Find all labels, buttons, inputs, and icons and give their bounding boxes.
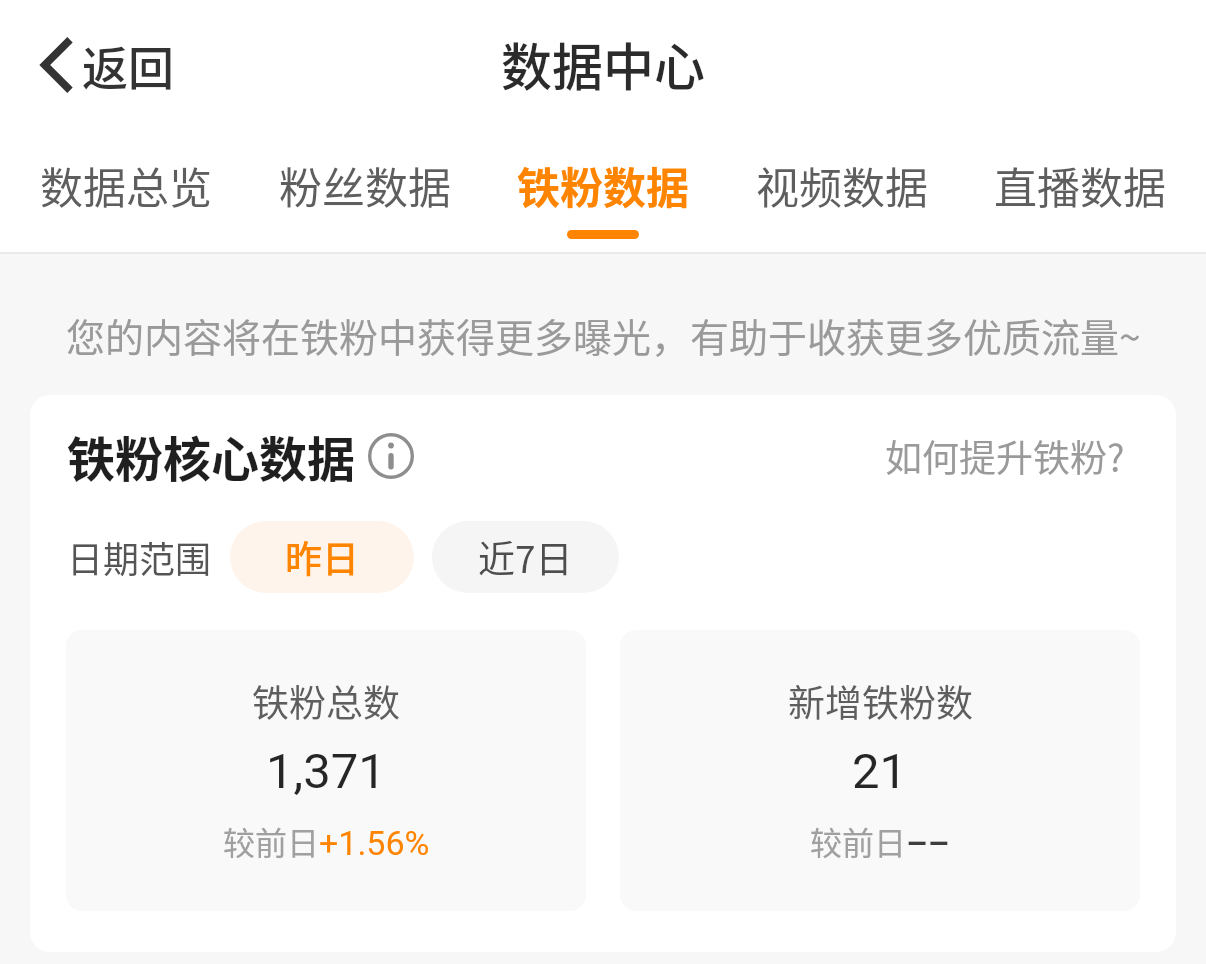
staticText: 返回 bbox=[82, 32, 174, 99]
staticText: 数据中心 bbox=[501, 27, 706, 101]
button[interactable]: 直播数据 bbox=[994, 128, 1166, 252]
staticText: 铁粉数据 bbox=[517, 154, 689, 216]
staticText: 粉丝数据 bbox=[279, 154, 451, 216]
button[interactable]: 铁粉总数 bbox=[66, 630, 586, 911]
button[interactable]: 如何提升铁粉? bbox=[885, 429, 1125, 483]
button[interactable]: 昨日 bbox=[230, 521, 414, 593]
button[interactable]: 铁粉数据 bbox=[517, 128, 689, 252]
button[interactable]: 返回 bbox=[28, 21, 186, 108]
staticText: 较前日+1.56% bbox=[223, 818, 430, 864]
staticText: 昨日 bbox=[285, 530, 359, 584]
button[interactable]: 说明 bbox=[368, 433, 414, 479]
staticText: 铁粉总数 bbox=[252, 674, 400, 728]
staticText: 新增铁粉数 bbox=[788, 674, 973, 728]
staticText: 数据总览 bbox=[40, 154, 212, 216]
button[interactable]: 数据总览 bbox=[40, 128, 212, 252]
button[interactable]: 新增铁粉数 bbox=[620, 630, 1140, 911]
staticText: 您的内容将在铁粉中获得更多曝光，有助于收获更多优质流量~ bbox=[66, 307, 1141, 363]
staticText: 铁粉核心数据 bbox=[67, 421, 356, 491]
staticText: 1,371 bbox=[266, 743, 386, 800]
staticText: 直播数据 bbox=[994, 154, 1166, 216]
staticText: 近7日 bbox=[478, 530, 573, 584]
staticText: 21 bbox=[852, 743, 908, 800]
staticText: 视频数据 bbox=[756, 154, 928, 216]
staticText: 日期范围 bbox=[67, 531, 212, 583]
button[interactable]: 视频数据 bbox=[756, 128, 928, 252]
staticText: 较前日–– bbox=[810, 818, 950, 864]
button[interactable]: 近7日 bbox=[432, 521, 619, 593]
button[interactable]: 粉丝数据 bbox=[279, 128, 451, 252]
